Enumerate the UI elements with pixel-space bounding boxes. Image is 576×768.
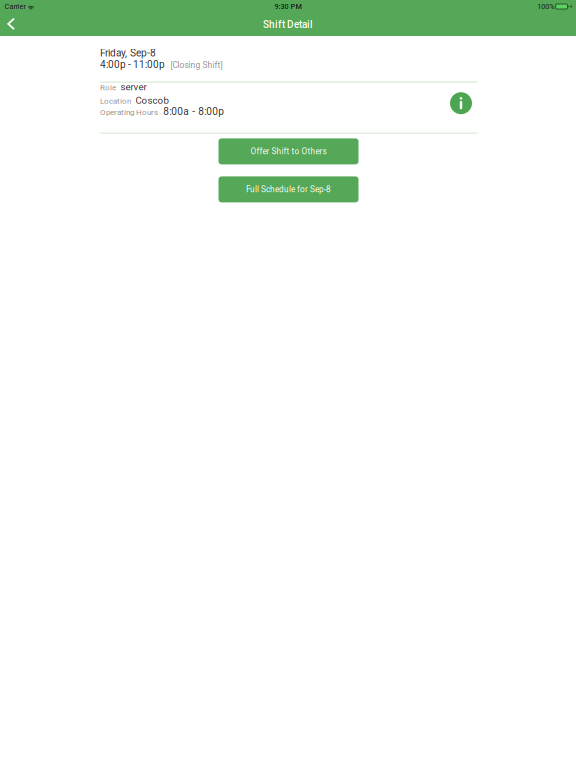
button[interactable]: Offer Shift to Others: [218, 138, 358, 164]
staticText: server: [121, 81, 147, 93]
button[interactable]: Full Schedule for Sep-8: [218, 176, 358, 202]
staticText: [Closing Shift]: [170, 60, 222, 70]
staticText: 4:00p - 11:00p: [100, 59, 165, 71]
staticText: Location: [100, 96, 131, 106]
staticText: Carrier: [4, 2, 25, 11]
staticText: Operating Hours: [100, 108, 158, 117]
staticText: Role: [100, 83, 116, 92]
button[interactable]: Back: [0, 13, 22, 35]
staticText: Offer Shift to Others: [250, 146, 326, 156]
staticText: 8:00a - 8:00p: [163, 106, 224, 118]
staticText: 100%: [537, 2, 554, 11]
staticText: Friday, Sep-8: [100, 47, 156, 59]
button[interactable]: Shift info: [450, 92, 472, 114]
staticText: 9:30 PM: [274, 2, 301, 11]
staticText: Coscob: [136, 95, 169, 106]
staticText: Full Schedule for Sep-8: [246, 184, 331, 194]
staticText: Shift Detail: [263, 19, 313, 30]
